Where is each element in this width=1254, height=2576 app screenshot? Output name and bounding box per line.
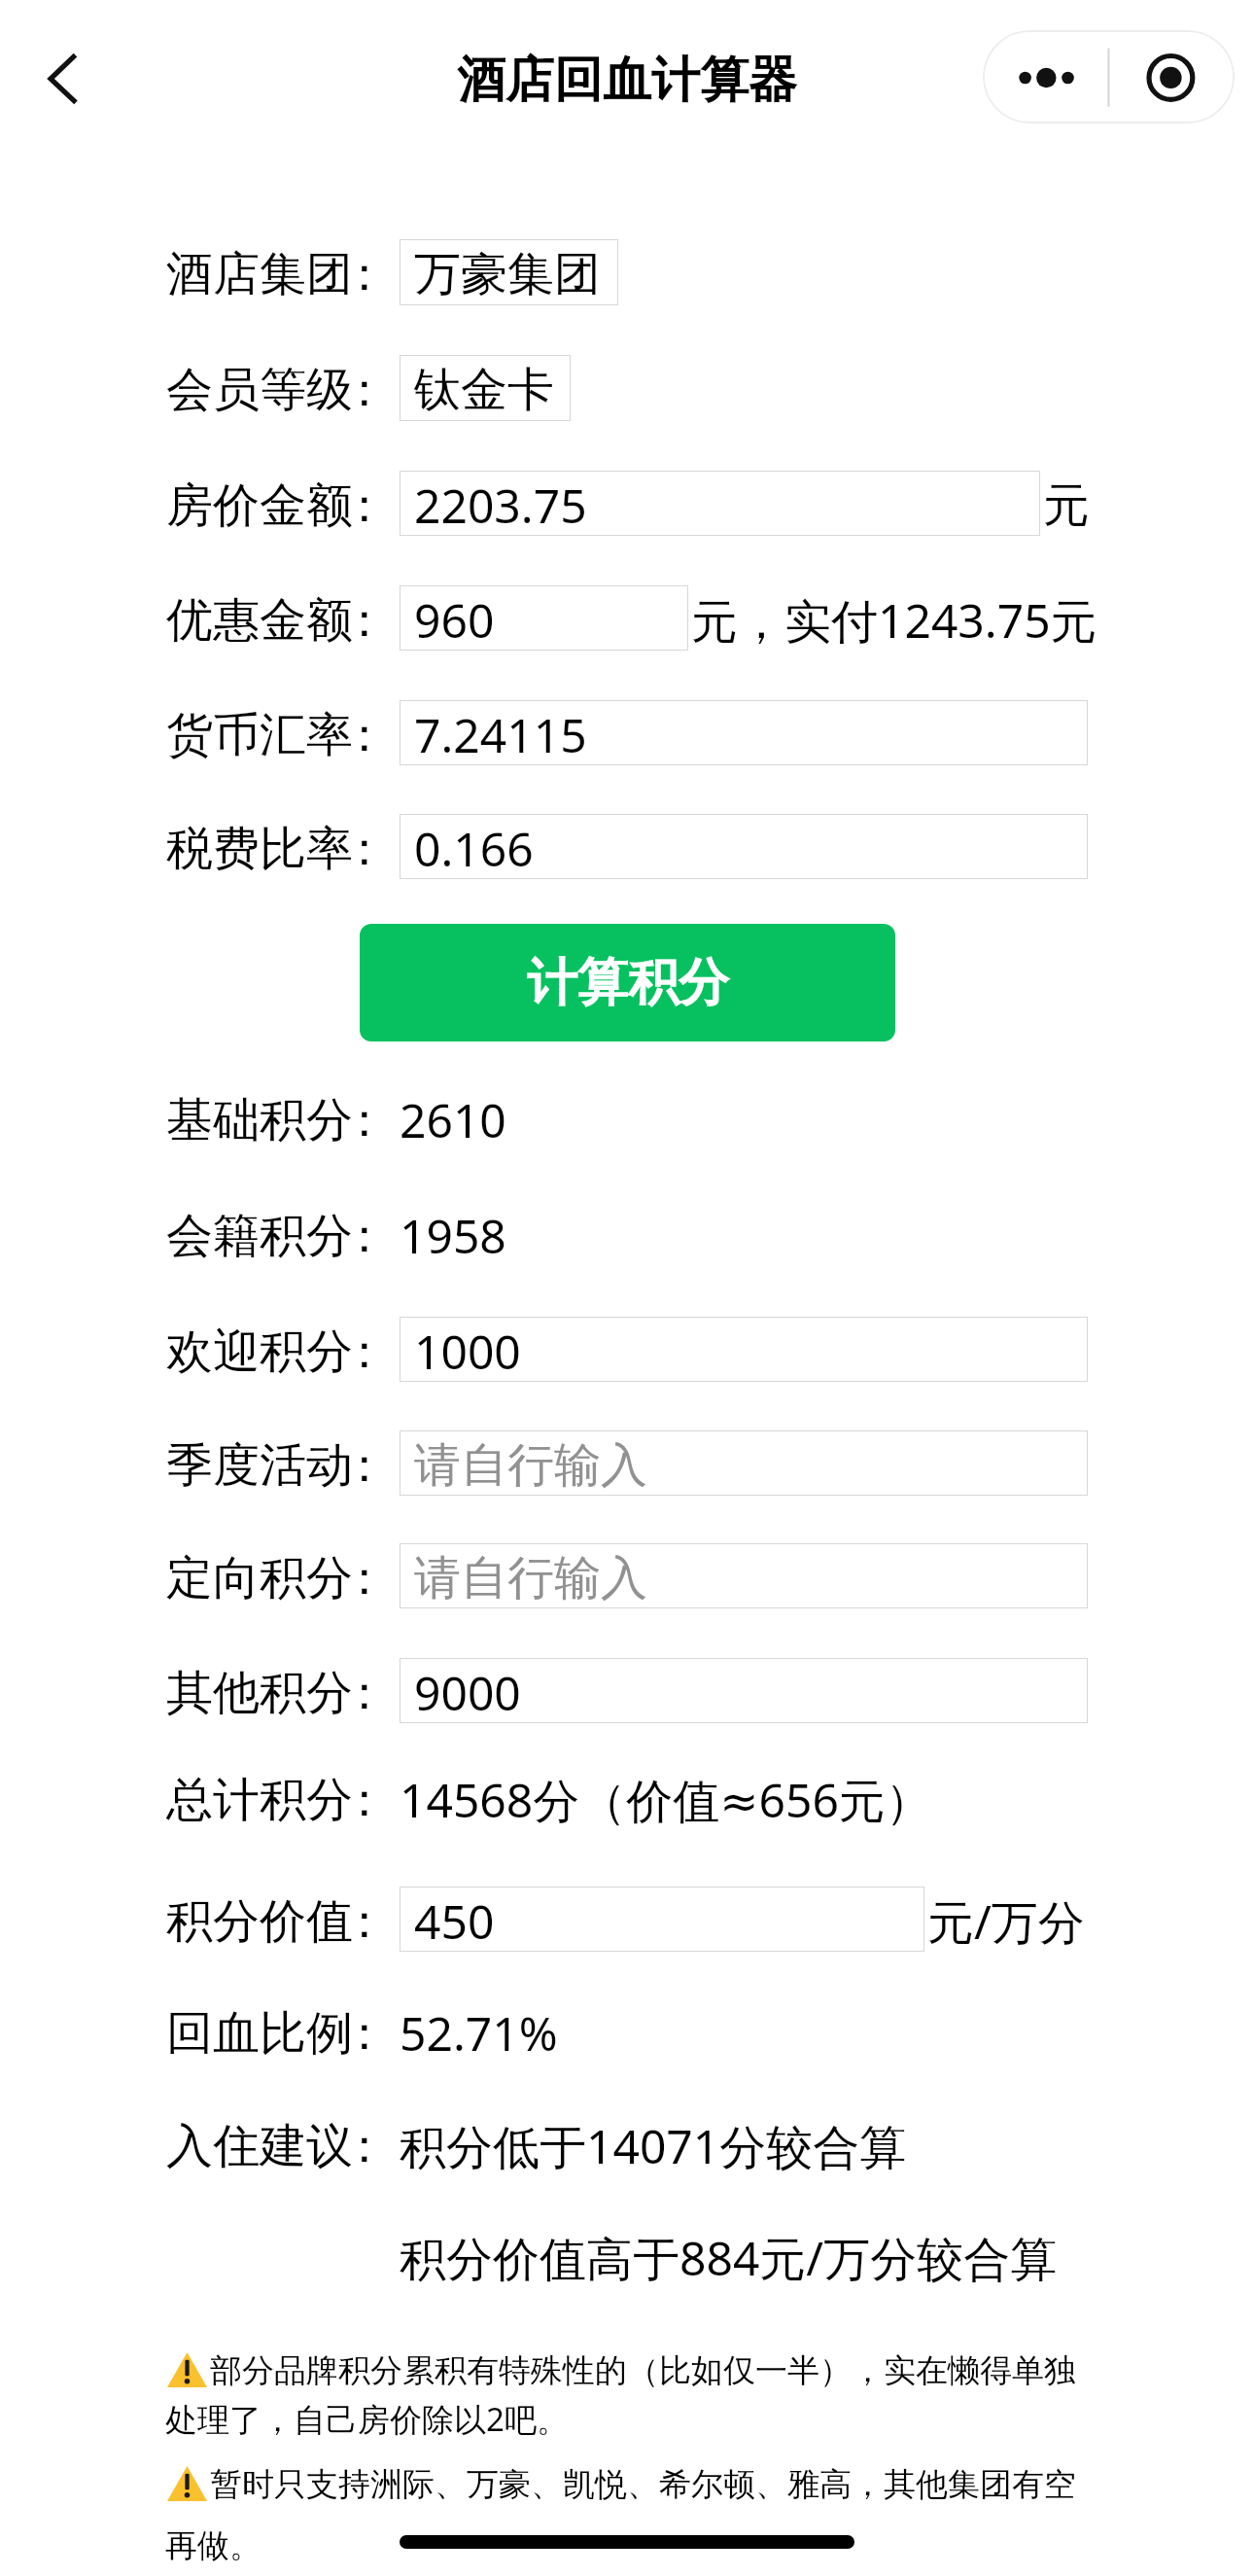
staticText: 酒店回血计算器: [457, 50, 797, 111]
staticText: 元/万分: [927, 1889, 1085, 1954]
staticText: ：: [341, 1771, 388, 1829]
staticText: 会籍积分: [166, 1207, 353, 1265]
staticText: 部分品牌积分累积有特殊性的（比如仅一半），实在懒得单独: [210, 2350, 1076, 2391]
button[interactable]: 7.24115: [400, 700, 1088, 765]
staticText: 季度活动: [166, 1436, 353, 1495]
staticText: ：: [341, 1207, 388, 1265]
button[interactable]: 960: [400, 585, 688, 651]
staticText: 入住建议: [166, 2117, 353, 2175]
staticText: 2203.75: [414, 474, 587, 537]
staticText: ：: [341, 2117, 388, 2175]
staticText: ：: [341, 1091, 388, 1149]
staticText: 优惠金额: [166, 591, 353, 650]
staticText: 积分价值高于884元/万分较合算: [400, 2226, 1058, 2290]
staticText: 房价金额: [166, 476, 353, 535]
staticText: 税费比率: [166, 820, 353, 878]
staticText: 9000: [414, 1661, 521, 1724]
staticText: 积分低于14071分较合算: [400, 2114, 907, 2178]
staticText: 再做。: [165, 2525, 261, 2566]
staticText: 960: [414, 588, 495, 652]
staticText: 欢迎积分: [166, 1323, 353, 1381]
staticText: 积分价值: [166, 1892, 353, 1951]
staticText: 请自行输入: [414, 1436, 647, 1495]
staticText: 450: [414, 1889, 495, 1953]
button[interactable]: 450: [400, 1887, 924, 1952]
staticText: ：: [341, 1549, 388, 1607]
staticText: 钛金卡: [414, 361, 554, 419]
button[interactable]: 万豪集团: [400, 239, 618, 305]
staticText: 万豪集团: [414, 245, 601, 303]
staticText: 暂时只支持洲际、万豪、凯悦、希尔顿、雅高，其他集团有空: [210, 2464, 1076, 2505]
button[interactable]: 请自行输入: [400, 1430, 1088, 1496]
staticText: 计算积分: [527, 951, 729, 1015]
staticText: ：: [341, 1436, 388, 1495]
staticText: 基础积分: [166, 1091, 353, 1149]
staticText: ：: [341, 476, 388, 535]
staticText: ：: [341, 1323, 388, 1381]
staticText: 1958: [400, 1204, 506, 1267]
staticText: 定向积分: [166, 1549, 353, 1607]
staticText: 回血比例: [166, 2004, 353, 2063]
staticText: 14568分（价值≈656元）: [400, 1768, 932, 1832]
staticText: 7.24115: [414, 703, 587, 766]
button[interactable]: 9000: [400, 1658, 1088, 1723]
staticText: 其他积分: [166, 1664, 353, 1722]
staticText: 0.166: [414, 817, 534, 880]
button[interactable]: 2203.75: [400, 471, 1040, 536]
staticText: 会员等级: [166, 361, 353, 419]
button[interactable]: 1000: [400, 1317, 1088, 1382]
staticText: 货币汇率: [166, 706, 353, 764]
staticText: ：: [341, 706, 388, 764]
staticText: ：: [341, 591, 388, 650]
button[interactable]: Back: [21, 43, 91, 115]
button[interactable]: 钛金卡: [400, 355, 571, 421]
button[interactable]: 0.166: [400, 814, 1088, 879]
staticText: ：: [341, 1892, 388, 1951]
staticText: ：: [341, 245, 388, 303]
staticText: 总计积分: [166, 1771, 353, 1829]
staticText: 处理了，自己房价除以2吧。: [165, 2397, 569, 2441]
staticText: 52.71%: [400, 2001, 558, 2064]
button[interactable]: More options and close: [983, 30, 1235, 124]
staticText: ：: [341, 820, 388, 878]
staticText: ：: [341, 361, 388, 419]
staticText: 元，实付1243.75元: [691, 588, 1097, 653]
staticText: 请自行输入: [414, 1549, 647, 1607]
staticText: ：: [341, 1664, 388, 1722]
button[interactable]: 计算积分: [360, 924, 895, 1041]
staticText: 2610: [400, 1088, 506, 1151]
staticText: 元: [1043, 476, 1090, 535]
staticText: 1000: [414, 1320, 521, 1383]
button[interactable]: 请自行输入: [400, 1543, 1088, 1608]
staticText: ：: [341, 2004, 388, 2063]
staticText: 酒店集团: [166, 245, 353, 303]
